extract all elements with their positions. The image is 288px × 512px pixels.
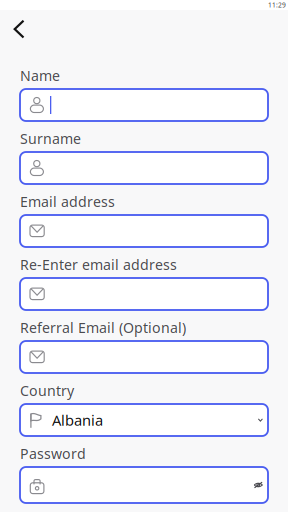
button[interactable] <box>20 215 268 247</box>
button[interactable] <box>20 467 268 503</box>
staticText: Password <box>20 444 86 463</box>
staticText: Albania <box>52 410 103 430</box>
button[interactable] <box>20 278 268 310</box>
button[interactable] <box>20 341 268 373</box>
staticText: Referral Email (Optional) <box>20 318 186 337</box>
staticText: Re-Enter email address <box>20 255 177 274</box>
staticText: Country <box>20 381 74 400</box>
staticText: Name <box>20 66 60 85</box>
button[interactable] <box>20 152 268 184</box>
staticText: Surname <box>20 129 81 148</box>
button[interactable]: Albania <box>20 404 268 436</box>
button[interactable]: Back <box>4 10 34 48</box>
staticText: Email address <box>20 192 115 211</box>
button[interactable] <box>20 89 268 121</box>
staticText: 11:29 <box>268 0 286 10</box>
